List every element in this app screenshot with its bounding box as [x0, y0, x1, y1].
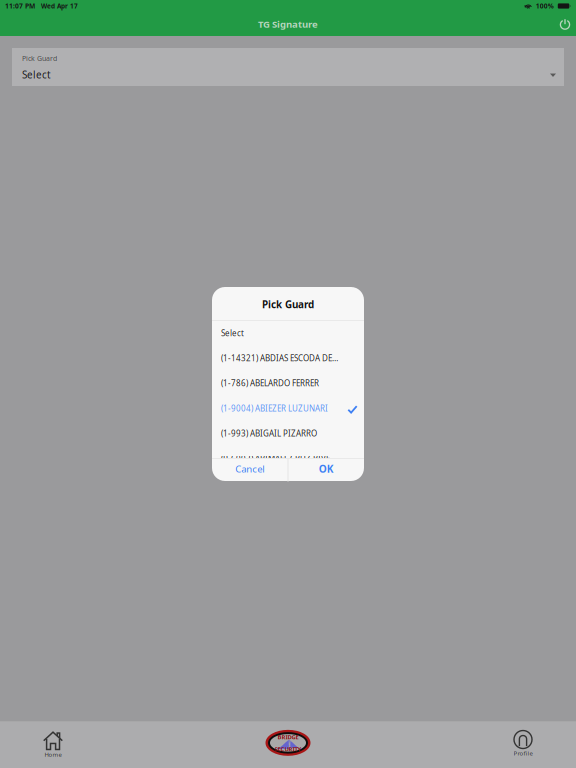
staticText: (1-9004) ABIEZER LUZUNARI	[221, 403, 328, 414]
button[interactable]: Pick Guard	[12, 48, 564, 86]
staticText: BRIDGE	[277, 733, 298, 741]
button[interactable]: (1-9004) ABIEZER LUZUNARI	[212, 396, 364, 421]
staticText: OK	[319, 462, 334, 476]
button[interactable]: Cancel	[212, 459, 288, 482]
staticText: Pick Guard	[262, 298, 314, 311]
staticText: TG Signature	[258, 17, 318, 31]
staticText: (P-6002) ABIMAEL CRUZ RIVE	[221, 453, 330, 464]
staticText: Select	[22, 68, 51, 81]
button[interactable]: Home	[0, 722, 106, 768]
staticText: SECURITY	[274, 745, 301, 753]
staticText: 11:07 PM	[5, 1, 35, 11]
button[interactable]: (P-6002) ABIMAEL CRUZ RIVE	[212, 446, 364, 471]
staticText: Wed Apr 17	[41, 2, 78, 10]
button[interactable]: (1-786) ABELARDO FERRER	[212, 371, 364, 396]
button[interactable]: (1-993) ABIGAIL PIZARRO	[212, 421, 364, 446]
staticText: (1-993) ABIGAIL PIZARRO	[221, 428, 317, 439]
staticText: Cancel	[235, 462, 264, 475]
button[interactable]: Log out	[554, 12, 576, 36]
button[interactable]: OK	[288, 459, 364, 482]
staticText: Profile	[513, 749, 532, 757]
staticText: 100%	[536, 1, 554, 11]
staticText: (1-786) ABELARDO FERRER	[221, 378, 319, 389]
button[interactable]: Profile	[470, 721, 576, 767]
staticText: Pick Guard	[22, 54, 57, 63]
button[interactable]: Select	[212, 320, 364, 346]
staticText: (1-14321) ABDIAS ESCODA DE…	[221, 353, 338, 364]
button[interactable]: (1-14321) ABDIAS ESCODA DE…	[212, 346, 364, 371]
staticText: Select	[221, 328, 244, 338]
button[interactable]: Bridge Security	[235, 720, 341, 766]
staticText: Home	[44, 750, 61, 758]
